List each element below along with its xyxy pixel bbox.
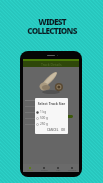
button[interactable]: 1 kg <box>35 109 68 115</box>
button[interactable]: Search <box>37 165 51 172</box>
button[interactable]: Track Details <box>23 61 79 67</box>
button[interactable]: Home <box>23 165 37 172</box>
staticText: Select Track Size <box>35 101 68 106</box>
staticText: WIDEST COLLECTIONS <box>27 16 77 37</box>
staticText: Track Details <box>41 62 62 67</box>
staticText: Home <box>27 169 34 172</box>
staticText: Cart <box>56 169 61 172</box>
button[interactable]: Add <box>67 115 73 118</box>
button[interactable]: Account <box>65 165 79 172</box>
staticText: 1 kg <box>40 110 47 114</box>
button[interactable]: 250 g <box>35 121 68 127</box>
button[interactable]: 500 g <box>35 115 68 121</box>
button[interactable]: Cart <box>51 165 65 172</box>
staticText: Search <box>41 169 48 172</box>
button[interactable]: OK <box>60 127 67 132</box>
staticText: 500 g <box>40 116 49 120</box>
button[interactable]: CANCEL <box>46 127 60 132</box>
staticText: 250 g <box>40 122 49 126</box>
staticText: Account <box>68 169 77 172</box>
